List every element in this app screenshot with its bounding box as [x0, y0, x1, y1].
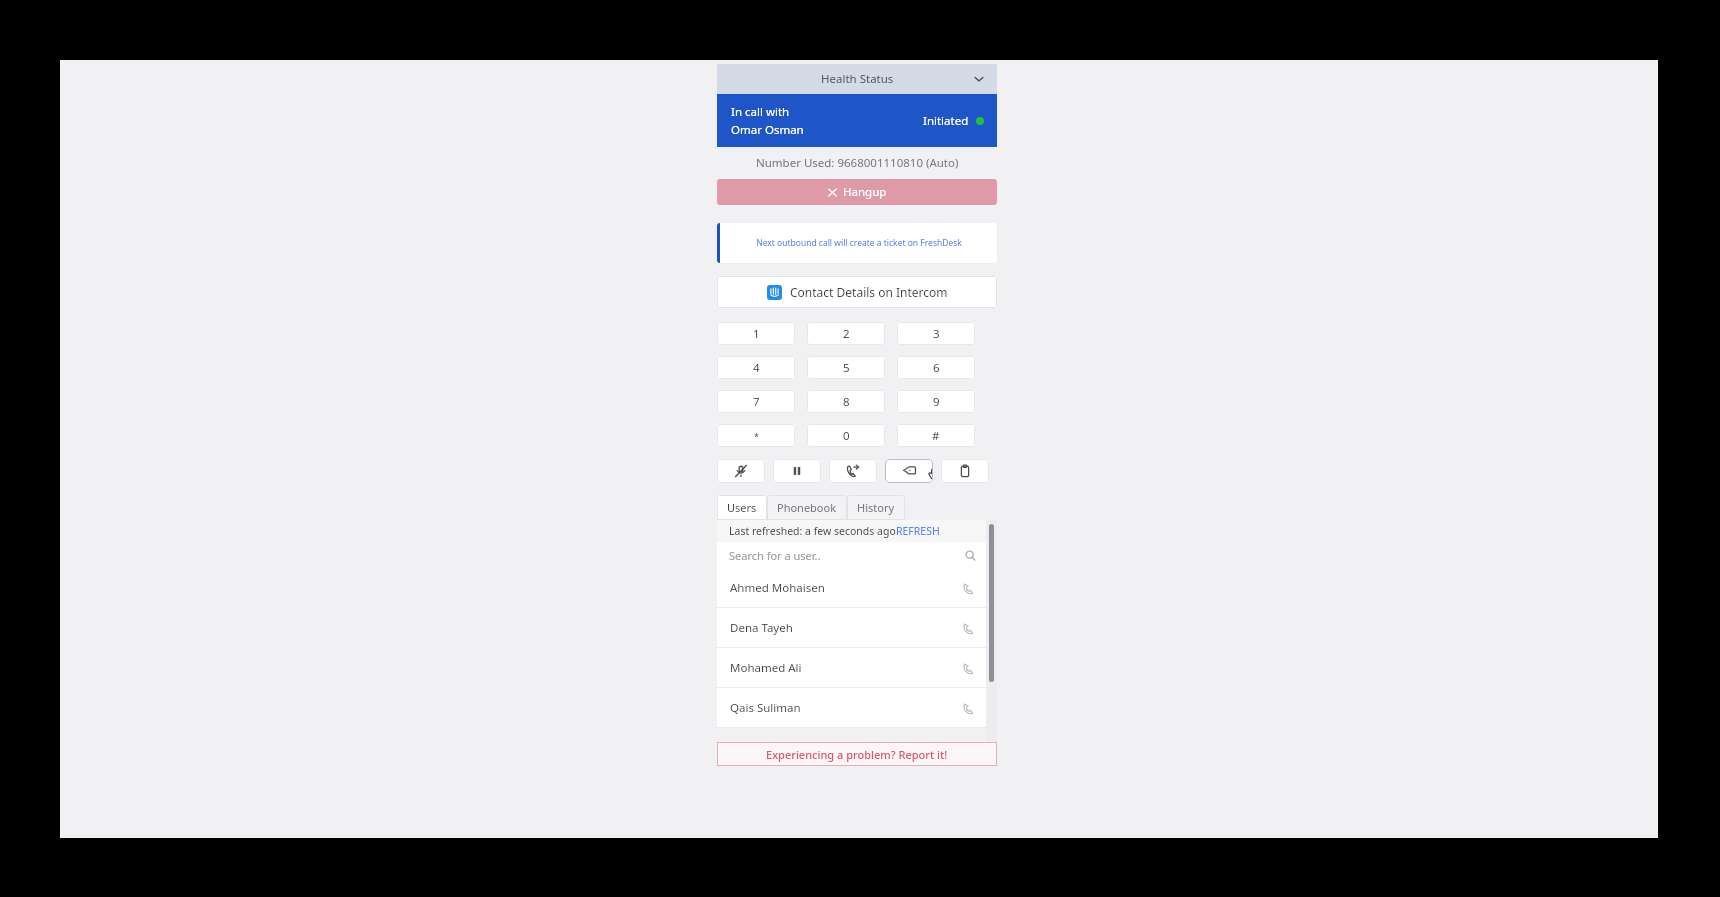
button[interactable]: Contact Details on Intercom [717, 276, 997, 308]
button[interactable]: 7 [717, 390, 795, 413]
staticText: 8 [843, 394, 850, 410]
button[interactable]: 1 [717, 322, 795, 345]
staticText: Mohamed Ali [730, 660, 802, 676]
staticText: # [932, 428, 940, 444]
button[interactable]: Mute microphone [717, 459, 765, 483]
staticText: 9 [933, 394, 940, 410]
staticText: * [754, 430, 759, 442]
button[interactable]: Dena Tayeh [717, 608, 986, 648]
button[interactable]: Call Qais Suliman [962, 702, 975, 715]
staticText: 4 [753, 360, 760, 376]
button[interactable]: 3 [897, 322, 975, 345]
staticText: Hangup [843, 184, 887, 200]
staticText: Initiated [923, 113, 969, 129]
staticText: Health Status [821, 71, 894, 87]
button[interactable]: * [717, 424, 795, 447]
staticText: 6 [933, 360, 940, 376]
staticText: 5 [843, 360, 850, 376]
staticText: Number Used: 9668001110810 (Auto) [756, 155, 959, 171]
button[interactable]: Transfer call [829, 459, 877, 483]
staticText: History [857, 500, 895, 515]
button[interactable]: Mohamed Ali [717, 648, 986, 688]
button[interactable]: Experiencing a problem? Report it! [717, 742, 997, 766]
button[interactable]: 2 [807, 322, 885, 345]
staticText: Next outbound call will create a ticket … [756, 237, 962, 249]
staticText: 0 [843, 428, 850, 444]
staticText: Qais Suliman [730, 700, 801, 716]
button[interactable]: In call with [717, 94, 997, 147]
button[interactable]: Call Dena Tayeh [962, 622, 975, 635]
button[interactable]: Next outbound call will create a ticket … [717, 223, 997, 263]
button[interactable]: Hold call [773, 459, 821, 483]
button[interactable]: Tag call [885, 459, 933, 483]
staticText: REFRESH [896, 524, 940, 538]
button[interactable]: History [847, 495, 905, 520]
button[interactable]: Search for a user.. [717, 542, 986, 568]
staticText: Ahmed Mohaisen [730, 580, 825, 596]
staticText: Dena Tayeh [730, 620, 793, 636]
staticText: 2 [843, 326, 850, 342]
button[interactable]: 5 [807, 356, 885, 379]
staticText: Users [727, 500, 757, 515]
staticText: Search for a user.. [729, 548, 821, 563]
button[interactable]: # [897, 424, 975, 447]
button[interactable]: 0 [807, 424, 885, 447]
staticText: Experiencing a problem? Report it! [766, 747, 948, 762]
staticText: 3 [933, 326, 940, 342]
button[interactable]: Users [717, 495, 767, 520]
button[interactable]: Health Status [717, 64, 997, 94]
staticText: In call with [731, 104, 790, 120]
button[interactable]: REFRESH [896, 524, 940, 538]
button[interactable]: 9 [897, 390, 975, 413]
button[interactable]: Phonebook [767, 495, 847, 520]
button[interactable]: Qais Suliman [717, 688, 986, 728]
button[interactable]: Call Mohamed Ali [962, 662, 975, 675]
staticText: Phonebook [777, 500, 837, 515]
staticText: 1 [753, 326, 760, 342]
button[interactable]: Ahmed Mohaisen [717, 568, 986, 608]
button[interactable]: Notes [941, 459, 989, 483]
staticText: Last refreshed: a few seconds ago [729, 524, 896, 538]
staticText: Omar Osman [731, 122, 804, 138]
button[interactable]: Hangup [717, 179, 997, 205]
button[interactable]: 6 [897, 356, 975, 379]
button[interactable]: 8 [807, 390, 885, 413]
staticText: Contact Details on Intercom [790, 284, 948, 300]
button[interactable]: 4 [717, 356, 795, 379]
staticText: 7 [753, 394, 760, 410]
button[interactable]: Call Ahmed Mohaisen [962, 582, 975, 595]
